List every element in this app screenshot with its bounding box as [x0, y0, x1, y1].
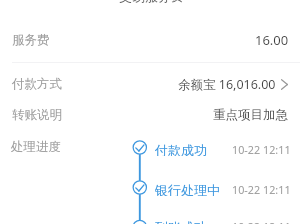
staticText: 银行处理中 [155, 182, 220, 196]
staticText: 重点项目加急 [213, 107, 288, 123]
staticText: 处理进度 [11, 139, 61, 155]
button[interactable]: 服务费 [0, 18, 300, 62]
staticText: 10-22 12:11 [232, 142, 291, 156]
staticText: 付款成功 [155, 142, 207, 156]
staticText: 10-22 12:11 [232, 182, 291, 196]
staticText: 10-22 12:11 [232, 219, 291, 224]
button[interactable]: 付款成功 [155, 142, 291, 156]
button[interactable]: 到账成功 [155, 219, 291, 224]
staticText: 到账成功 [155, 219, 207, 224]
button[interactable]: 付款方式 [0, 67, 300, 101]
button[interactable]: 转账说明 [0, 98, 300, 132]
staticText: 转账说明 [12, 107, 62, 123]
staticText: 16.00 [255, 31, 289, 49]
staticText: 服务费 [12, 32, 50, 48]
staticText: 交易服务费 [119, 0, 184, 4]
staticText: 余额宝 16,016.00 [178, 76, 276, 93]
other: 查看付款方式 [281, 79, 288, 90]
button[interactable]: 银行处理中 [155, 182, 291, 196]
staticText: 付款方式 [12, 76, 62, 92]
